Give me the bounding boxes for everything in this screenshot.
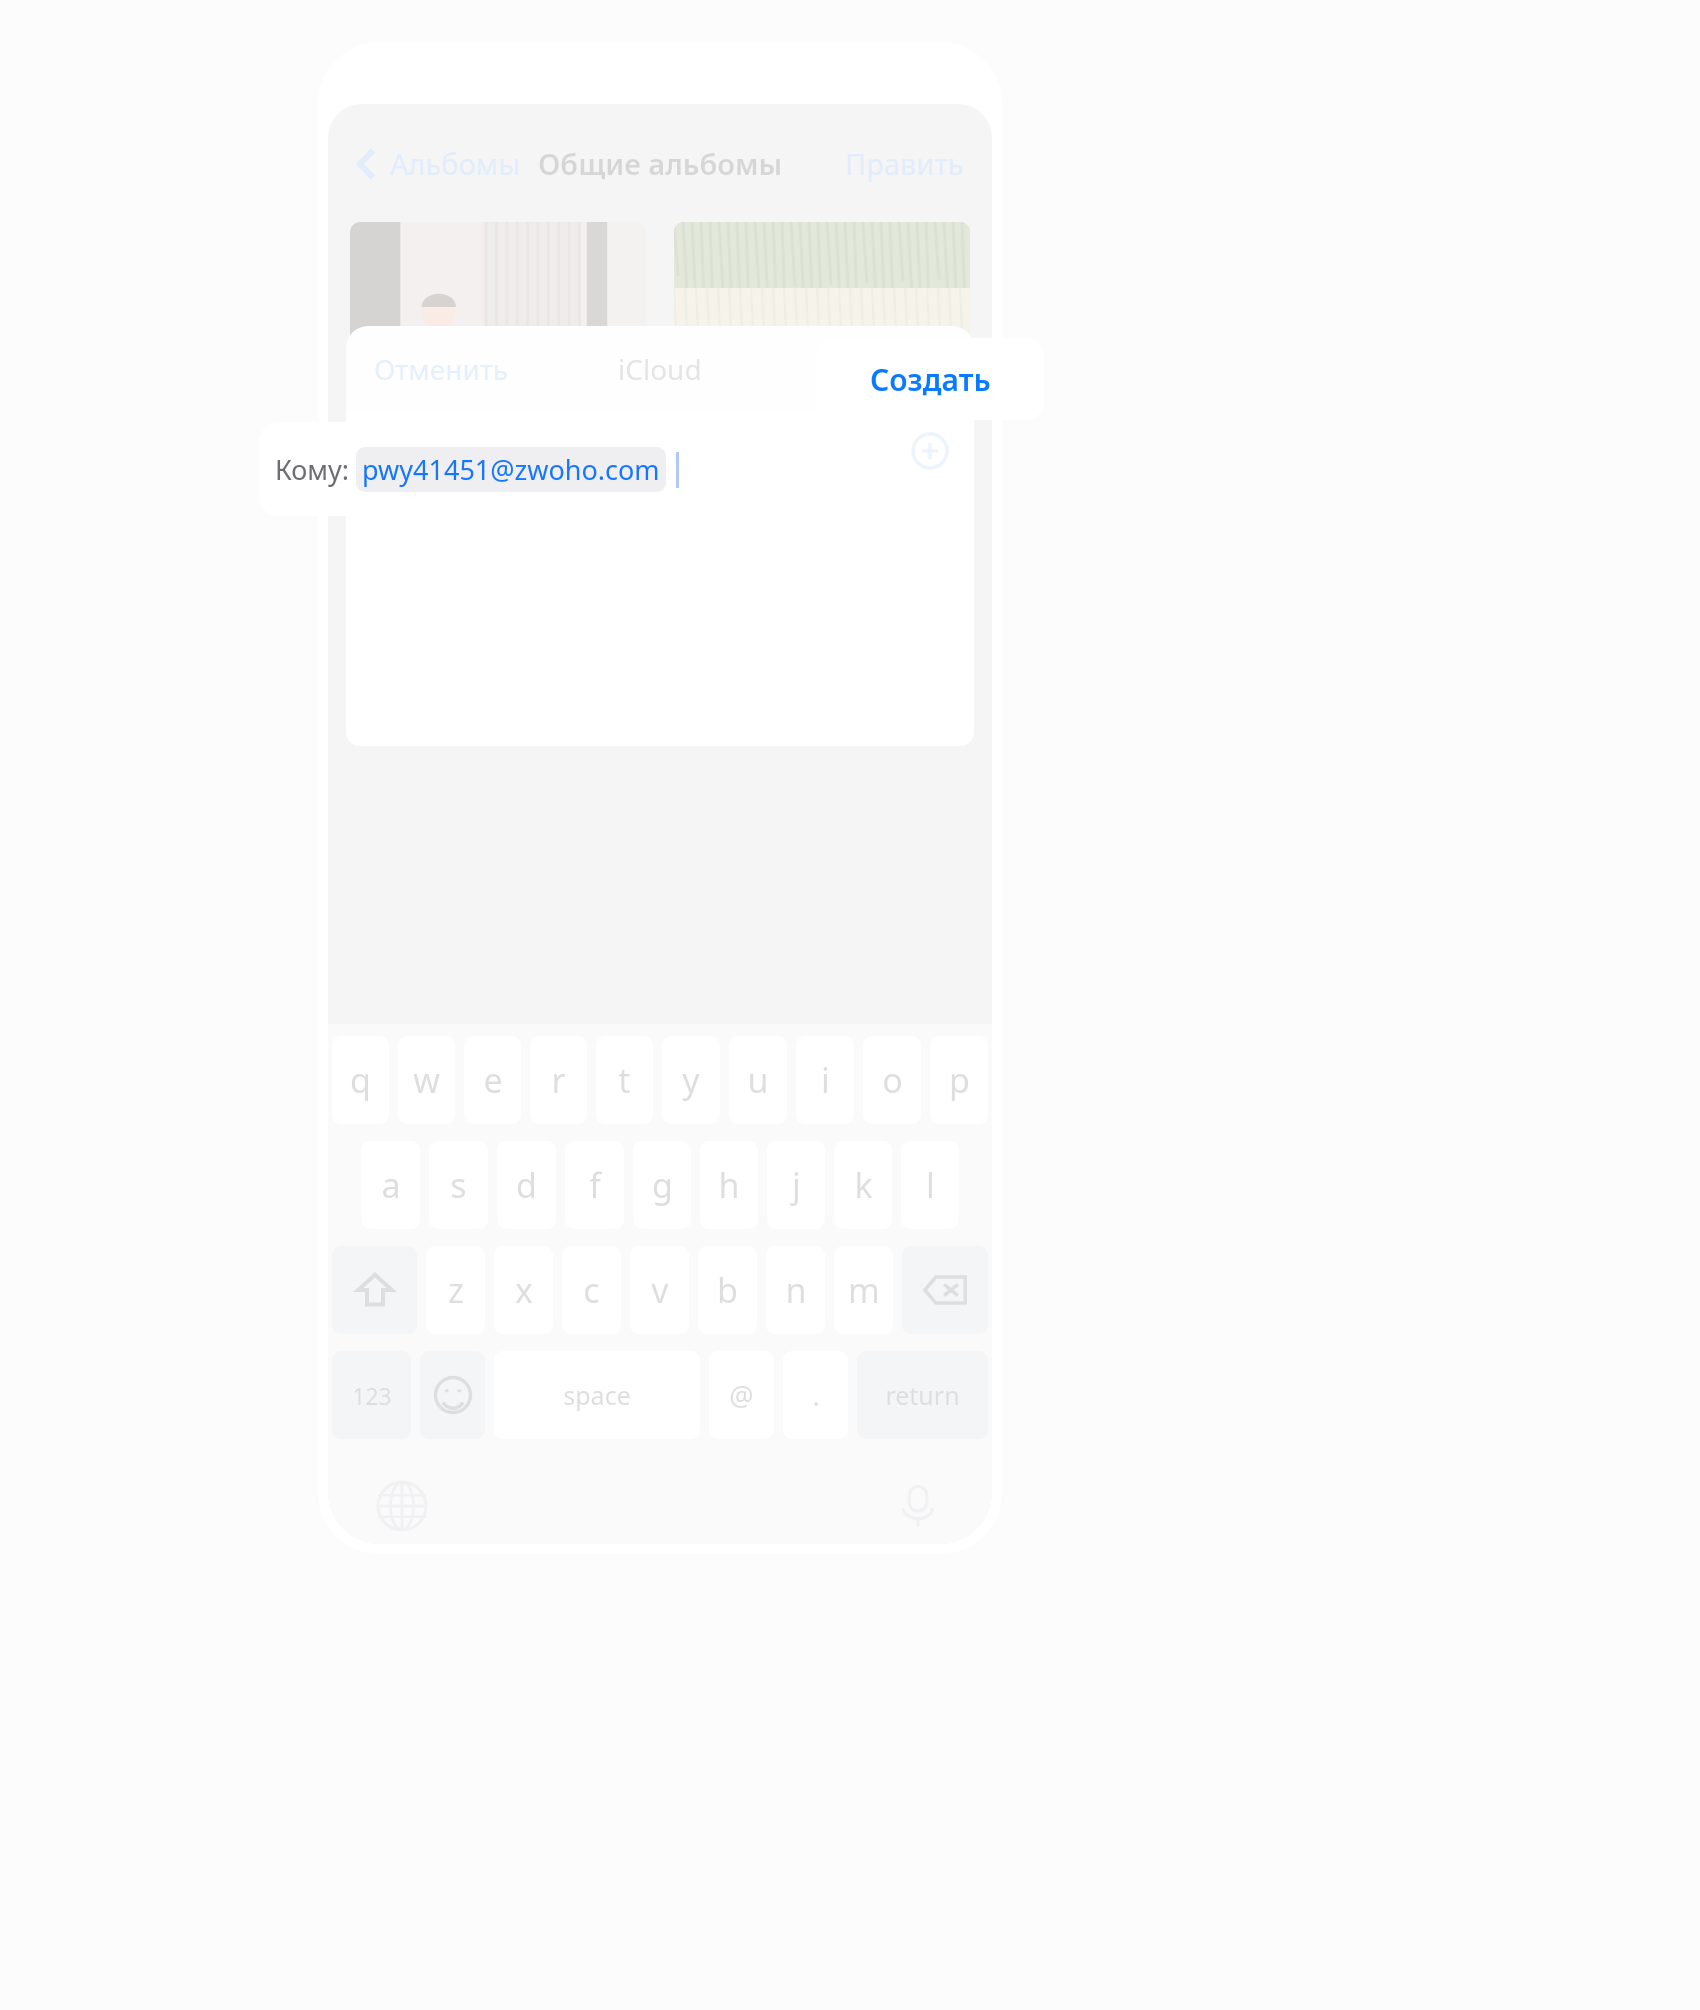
button[interactable]: Add recipient <box>908 429 952 473</box>
button[interactable]: return <box>857 1351 988 1439</box>
staticText: p <box>949 1057 970 1103</box>
staticText: z <box>448 1267 464 1313</box>
button[interactable]: Альбомы <box>356 144 521 183</box>
staticText: @ <box>729 1377 754 1414</box>
staticText: f <box>589 1162 601 1208</box>
staticText: o <box>882 1057 903 1103</box>
button[interactable]: x <box>494 1246 553 1334</box>
button[interactable]: m <box>834 1246 893 1334</box>
button[interactable]: @ <box>709 1351 774 1439</box>
button[interactable]: b <box>698 1246 757 1334</box>
staticText: l <box>926 1162 935 1208</box>
staticText: m <box>848 1267 880 1313</box>
staticText: u <box>747 1057 769 1103</box>
button[interactable]: l <box>901 1141 959 1229</box>
staticText: pwy41451@zwoho.com <box>362 451 660 488</box>
staticText: i <box>821 1057 830 1103</box>
button[interactable]: q <box>332 1036 389 1124</box>
staticText: return <box>885 1378 960 1412</box>
button[interactable]: space <box>494 1351 700 1439</box>
button[interactable]: u <box>729 1036 787 1124</box>
staticText: d <box>516 1162 537 1208</box>
button[interactable]: v <box>630 1246 689 1334</box>
button[interactable]: c <box>562 1246 621 1334</box>
staticText: n <box>785 1267 807 1313</box>
staticText: Альбомы <box>390 144 521 183</box>
button[interactable]: Shift <box>332 1246 417 1334</box>
staticText: w <box>413 1057 440 1103</box>
button[interactable]: j <box>767 1141 825 1229</box>
button[interactable]: Отменить <box>374 350 509 388</box>
staticText: . <box>812 1377 820 1414</box>
staticText: Править <box>845 144 964 183</box>
staticText: c <box>583 1267 600 1313</box>
button[interactable]: o <box>863 1036 921 1124</box>
staticText: e <box>483 1057 503 1103</box>
button[interactable]: p <box>930 1036 988 1124</box>
button[interactable]: w <box>398 1036 455 1124</box>
button[interactable]: Править <box>845 144 964 183</box>
staticText: a <box>381 1162 401 1208</box>
button[interactable]: g <box>633 1141 691 1229</box>
staticText: Общие альбомы <box>538 144 783 183</box>
button[interactable]: t <box>596 1036 653 1124</box>
button[interactable] <box>350 222 646 522</box>
staticText: t <box>618 1057 631 1103</box>
staticText: space <box>563 1378 631 1412</box>
button[interactable]: d <box>497 1141 556 1229</box>
staticText: Кому: <box>275 451 350 488</box>
button[interactable]: 123 <box>332 1351 411 1439</box>
staticText: x <box>515 1267 533 1313</box>
button[interactable]: f <box>565 1141 624 1229</box>
staticText: Создать <box>870 359 991 400</box>
button[interactable] <box>674 222 970 522</box>
staticText: g <box>652 1162 673 1208</box>
staticText: v <box>651 1267 669 1313</box>
button[interactable]: y <box>662 1036 720 1124</box>
button[interactable]: Кому: <box>259 422 775 516</box>
staticText: r <box>551 1057 566 1103</box>
button[interactable]: z <box>426 1246 485 1334</box>
staticText: h <box>718 1162 740 1208</box>
staticText: j <box>792 1162 801 1208</box>
button[interactable]: Backspace <box>902 1246 988 1334</box>
staticText: q <box>350 1057 371 1103</box>
button[interactable]: r <box>530 1036 587 1124</box>
staticText: s <box>450 1162 467 1208</box>
button[interactable]: k <box>834 1141 892 1229</box>
button[interactable]: Создать <box>816 338 1044 420</box>
staticText: 123 <box>352 1380 392 1411</box>
button[interactable]: a <box>361 1141 420 1229</box>
button[interactable]: i <box>796 1036 854 1124</box>
staticText: k <box>854 1162 873 1208</box>
button[interactable]: Change keyboard <box>374 1478 430 1534</box>
staticText: b <box>717 1267 738 1313</box>
staticText: y <box>682 1057 700 1103</box>
button[interactable]: s <box>429 1141 488 1229</box>
button[interactable]: n <box>766 1246 825 1334</box>
button[interactable]: h <box>700 1141 758 1229</box>
staticText: iCloud <box>618 350 702 388</box>
button[interactable]: e <box>464 1036 521 1124</box>
button[interactable]: Emoji <box>420 1351 485 1439</box>
